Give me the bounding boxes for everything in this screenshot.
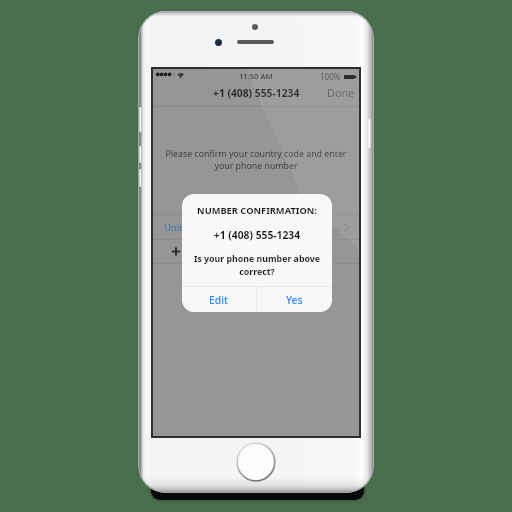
staticText: +1 (408) 555-1234 [190,228,324,242]
staticText: Please confirm your country code and ent… [163,148,349,172]
staticText: Done [327,85,355,100]
staticText: Is your phone number above correct? [190,253,324,277]
staticText: Yes [286,293,303,307]
staticText: 11:50 AM [239,71,273,81]
staticText: Edit [209,293,229,307]
staticText: NUMBER CONFIRMATION: [190,204,324,217]
button[interactable]: Yes [257,287,332,312]
button[interactable]: Edit [182,287,256,312]
staticText: United States [164,221,223,234]
staticText: +1 (408) 555-1234 [213,86,300,100]
button[interactable]: United States [153,215,359,239]
staticText: 100% [320,71,341,82]
button[interactable]: Done [327,85,355,100]
